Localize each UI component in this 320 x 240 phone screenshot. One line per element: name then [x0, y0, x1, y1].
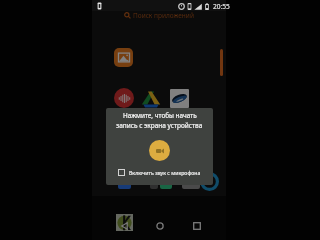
- button[interactable]: Недавние приложения: [186, 215, 208, 237]
- button[interactable]: Браузер: [200, 172, 219, 191]
- button[interactable]: Начать запись: [149, 140, 170, 161]
- button[interactable]: Камера: [182, 173, 200, 189]
- staticText: Нажмите, чтобы начать: [123, 111, 197, 120]
- button[interactable]: Галерея: [114, 48, 133, 67]
- button[interactable]: Включить звук с микрофона: [118, 169, 213, 176]
- button[interactable]: Приложение: [116, 214, 133, 231]
- button[interactable]: Главный экран: [149, 215, 171, 237]
- staticText: Включить звук с микрофона: [129, 169, 201, 176]
- button[interactable]: Приложение 3: [160, 174, 172, 189]
- button[interactable]: Приложение 1: [118, 174, 131, 189]
- button[interactable]: Google Диск: [141, 89, 161, 109]
- button[interactable]: Приложение 2: [150, 174, 158, 189]
- button[interactable]: Поиск приложений: [92, 9, 226, 21]
- button[interactable]: Диктофон: [114, 88, 134, 108]
- button[interactable]: Назад: [113, 215, 135, 237]
- button[interactable]: Приложение: [170, 89, 189, 108]
- staticText: 20:55: [213, 2, 230, 11]
- staticText: запись с экрана устройства: [116, 121, 203, 130]
- staticText: Поиск приложений: [133, 11, 194, 20]
